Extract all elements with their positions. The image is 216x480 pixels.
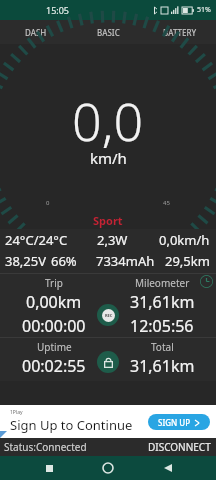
button[interactable]: Record [97, 304, 119, 326]
button[interactable]: Back [157, 457, 179, 479]
staticText: Sport [93, 213, 123, 228]
staticText: DASH [25, 27, 47, 38]
button[interactable]: BASIC [72, 20, 144, 44]
staticText: 0,0 [72, 85, 144, 156]
staticText: 24°C/24°C [5, 231, 68, 249]
staticText: 31,61km [130, 291, 195, 313]
staticText: Mileometer [135, 276, 190, 290]
staticText: km/h [90, 148, 127, 168]
staticText: Trip [45, 276, 63, 290]
staticText: 66% [51, 252, 77, 270]
staticText: 00:00:00 [22, 315, 86, 337]
staticText: REC [105, 313, 113, 318]
staticText: 12:05:56 [130, 315, 194, 337]
staticText: 29,5km [165, 252, 210, 270]
staticText: Sign Up to Continue [10, 416, 133, 434]
staticText: 15:05 [46, 4, 70, 16]
staticText: Total [151, 340, 174, 354]
button[interactable]: Clock [200, 275, 213, 288]
staticText: 0,00km [26, 291, 82, 313]
staticText: 1Play [10, 409, 23, 416]
button[interactable]: Recents [38, 457, 60, 479]
staticText: 2,3W [97, 231, 128, 249]
staticText: 45 [163, 199, 170, 207]
button[interactable]: DASH [0, 20, 72, 44]
staticText: Uptime [37, 340, 72, 354]
staticText: SIGN UP [158, 417, 191, 428]
staticText: BASIC [97, 27, 120, 38]
staticText: 7334mAh [96, 252, 155, 270]
staticText: BATTERY [163, 27, 197, 38]
button[interactable]: BATTERY [144, 20, 216, 44]
staticText: 00:02:55 [22, 355, 86, 377]
staticText: 31,61km [130, 355, 195, 377]
staticText: 0 [46, 199, 50, 207]
staticText: DISCONNECT [148, 440, 211, 454]
staticText: 51% [197, 5, 211, 15]
button[interactable]: DISCONNECT [143, 438, 216, 456]
button[interactable]: Home [97, 457, 119, 479]
staticText: 0,0km/h [159, 231, 210, 249]
button[interactable]: 1Play [0, 405, 216, 438]
staticText: Status:Connected [4, 440, 87, 454]
staticText: 38,25V [5, 252, 47, 270]
button[interactable]: Lock [97, 351, 119, 373]
button[interactable]: SIGN UP [148, 414, 210, 430]
